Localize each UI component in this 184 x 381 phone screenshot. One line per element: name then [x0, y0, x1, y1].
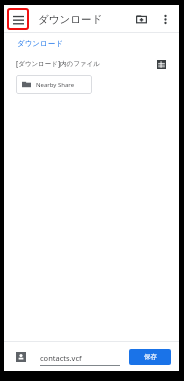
button[interactable]: More options	[156, 10, 174, 28]
staticText: 保存	[144, 353, 157, 361]
button[interactable]: Navigation menu	[7, 8, 29, 30]
button[interactable]: ダウンロード	[4, 33, 179, 54]
button[interactable]: 保存	[129, 349, 171, 365]
button[interactable]: Create new folder	[131, 9, 151, 29]
staticText: [ダウンロード]内のファイル	[16, 59, 100, 68]
staticText: ダウンロード	[17, 39, 63, 48]
button[interactable]: Switch to grid view	[154, 57, 168, 71]
staticText: ダウンロード	[38, 13, 103, 26]
staticText: contacts.vcf	[40, 353, 82, 363]
button[interactable]: Nearby Share	[16, 75, 92, 94]
button[interactable]: Contact file	[13, 349, 29, 365]
staticText: Nearby Share	[36, 81, 75, 89]
